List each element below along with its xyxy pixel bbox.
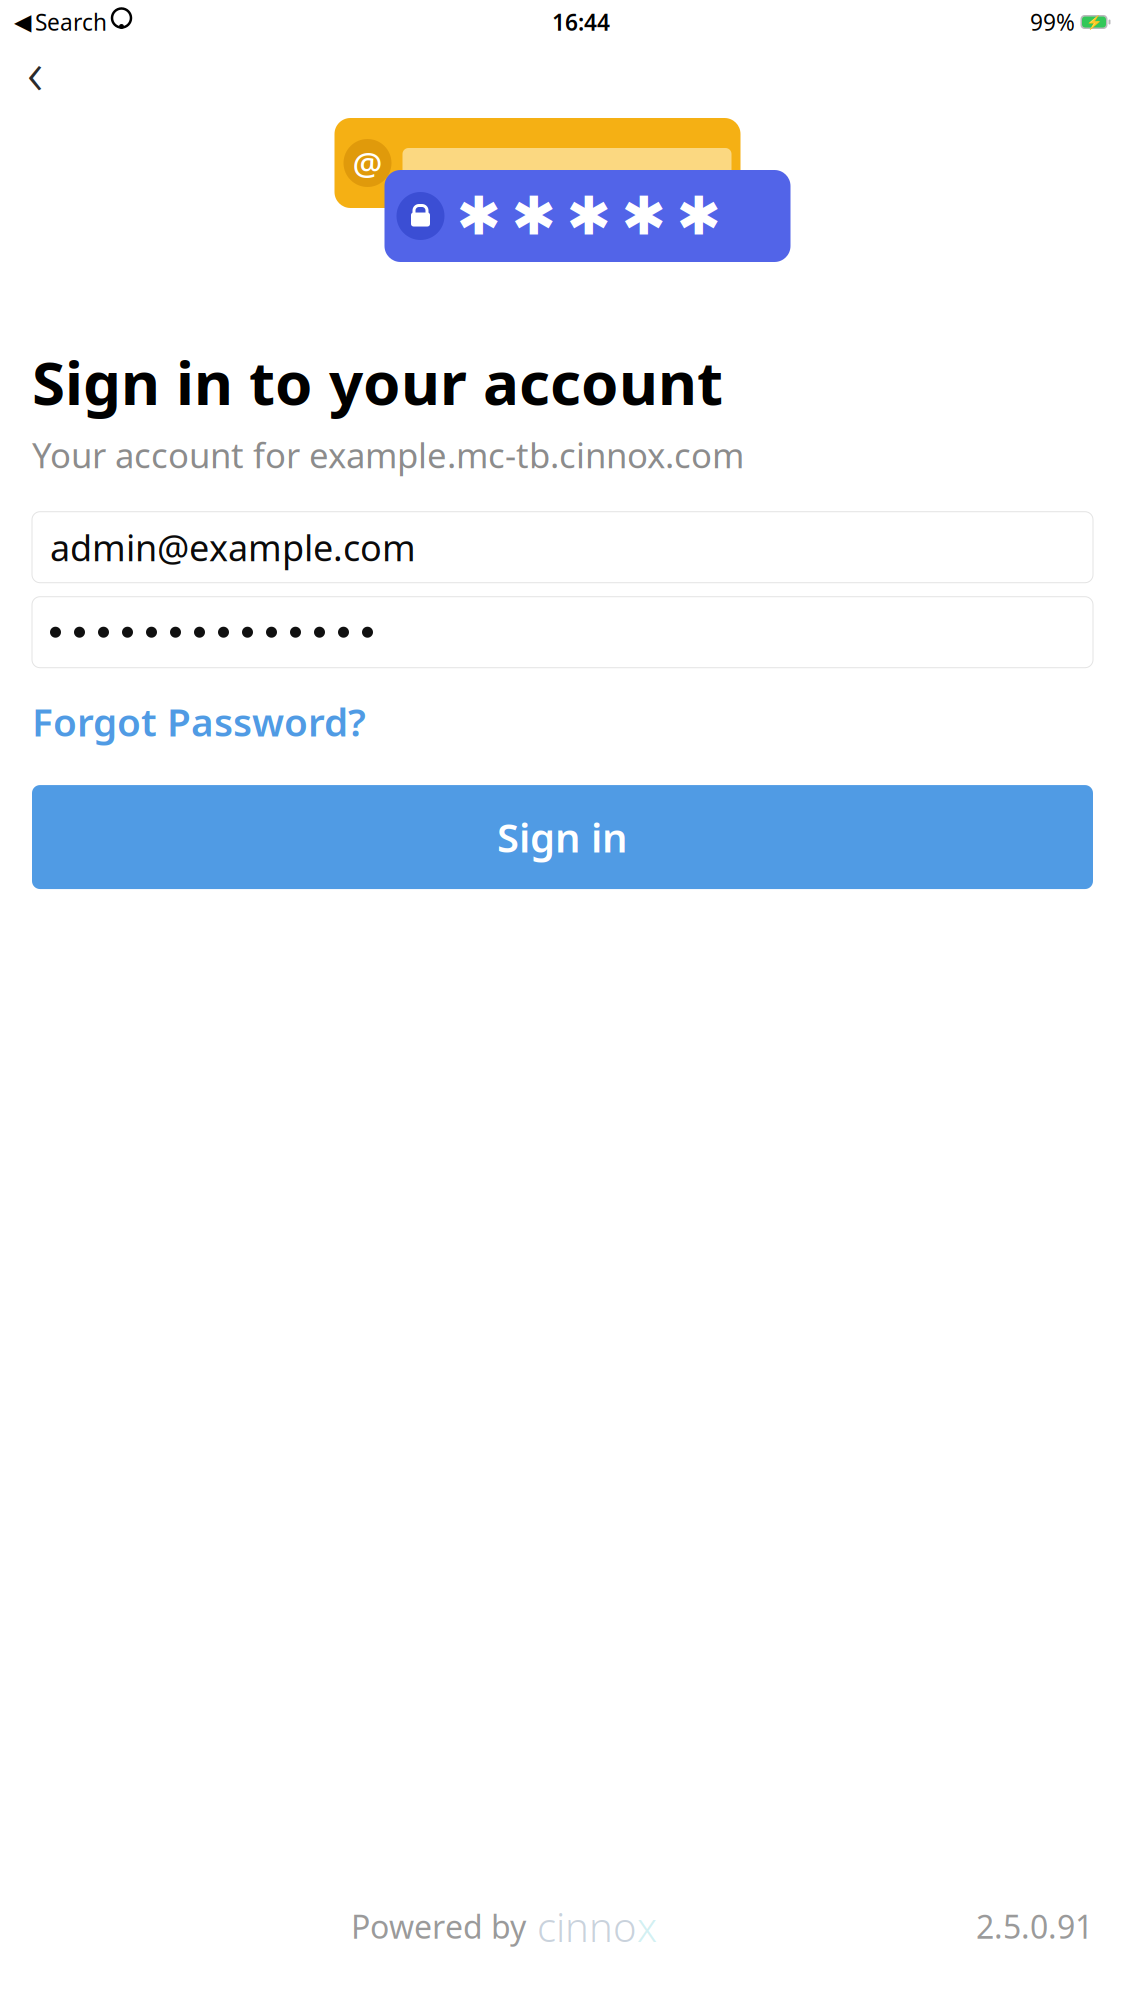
staticText: Your account for example.mc-tb.cinnox.co… xyxy=(32,432,744,478)
staticText: ✱ xyxy=(676,186,721,246)
staticText: cinno xyxy=(537,1900,637,1953)
staticText: 99% xyxy=(1030,7,1075,37)
staticText: Powered by xyxy=(351,1905,526,1948)
staticText: ◀ xyxy=(14,9,31,35)
staticText: ⚡ xyxy=(1085,14,1102,30)
button[interactable]: Sign in xyxy=(32,785,1093,889)
staticText: ✱ xyxy=(511,186,556,246)
staticText: @ xyxy=(352,141,382,185)
staticText: Sign in xyxy=(497,810,628,864)
staticText: 2.5.0.91 xyxy=(976,1905,1093,1948)
staticText: 16:44 xyxy=(552,7,610,37)
staticText: Sign in to your account xyxy=(32,342,723,422)
staticText: admin@example.com xyxy=(50,523,416,571)
staticText: ✱ xyxy=(566,186,611,246)
button[interactable]: Forgot Password? xyxy=(32,696,366,747)
staticText: Forgot Password? xyxy=(32,696,366,747)
staticText: ✱ xyxy=(621,186,666,246)
staticText: Search xyxy=(35,7,107,37)
staticText: x xyxy=(637,1900,657,1953)
button[interactable]: Back xyxy=(9,45,61,97)
staticText: ✱ xyxy=(456,186,501,246)
staticText: ‹ xyxy=(27,30,43,112)
